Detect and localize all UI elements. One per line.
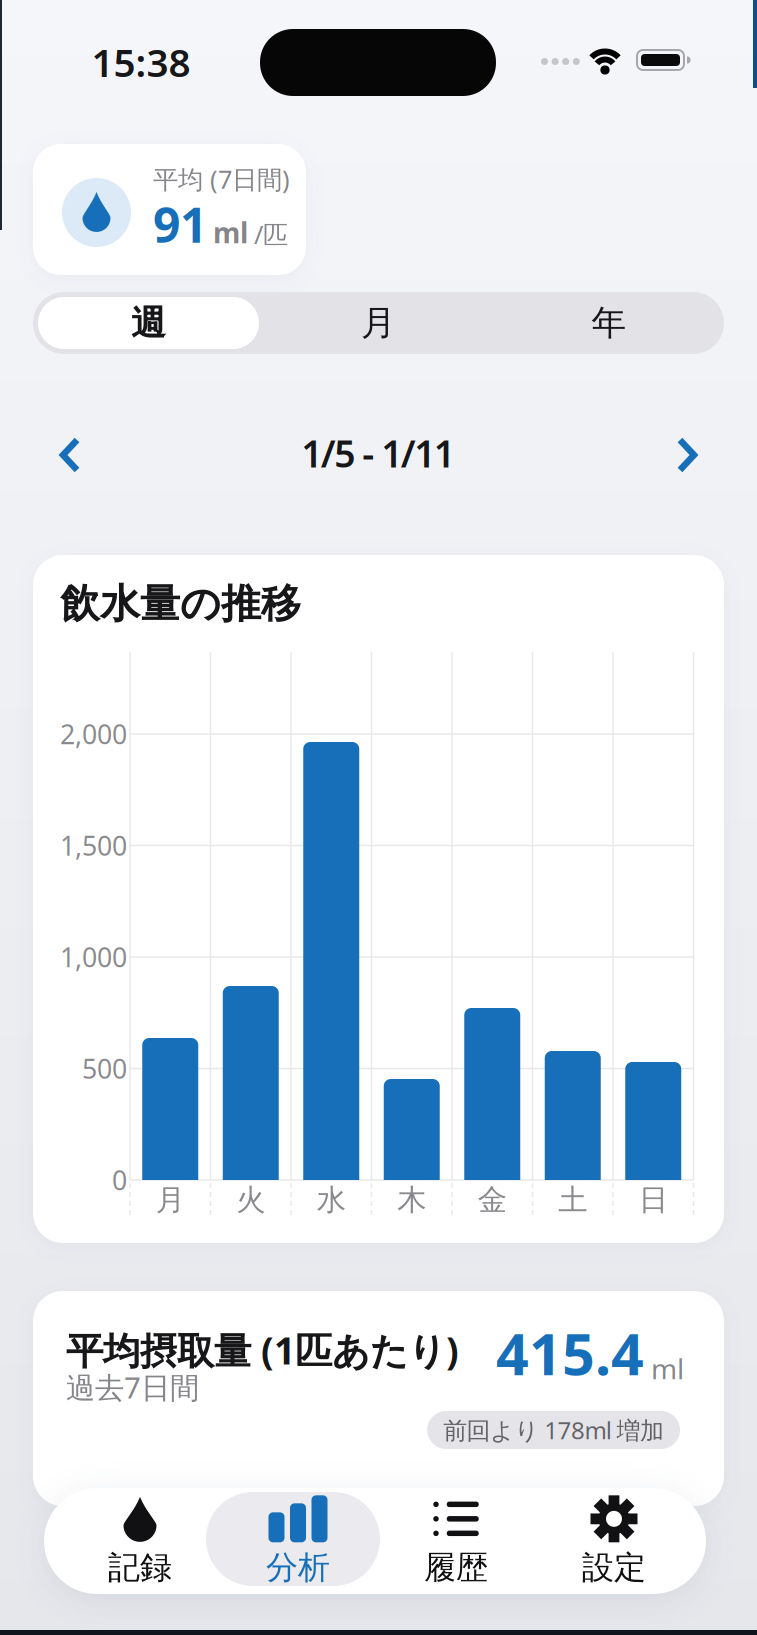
staticText: 15:38	[91, 36, 190, 88]
staticText: 記録	[108, 1548, 172, 1587]
staticText: 設定	[582, 1548, 646, 1587]
staticText: 週	[131, 302, 166, 344]
staticText: 分析	[266, 1548, 330, 1587]
staticText: 前回より 178ml 増加	[443, 1414, 664, 1446]
staticText: 年	[591, 302, 626, 344]
button[interactable]: 週	[38, 297, 259, 349]
button[interactable]: 年	[494, 292, 724, 354]
staticText: ml	[651, 1350, 684, 1387]
staticText: 0	[112, 1162, 127, 1198]
staticText: 履歴	[424, 1548, 488, 1587]
staticText: 水	[317, 1182, 346, 1218]
staticText: 日	[639, 1182, 668, 1218]
staticText: 500	[82, 1051, 127, 1086]
button[interactable]: 記録	[61, 1488, 219, 1594]
staticText: 木	[397, 1182, 426, 1218]
staticText: 土	[558, 1182, 587, 1218]
staticText: 金	[478, 1182, 507, 1218]
staticText: 月	[156, 1182, 185, 1218]
staticText: 91	[153, 192, 207, 256]
staticText: 1/5 - 1/11	[301, 428, 455, 478]
button[interactable]	[59, 437, 81, 473]
staticText: 月	[361, 302, 396, 344]
staticText: ml	[213, 214, 248, 251]
staticText: 1,500	[60, 828, 127, 863]
staticText: 平均 (7日間)	[153, 162, 290, 196]
button[interactable]: 月	[263, 292, 493, 354]
button[interactable]: 履歴	[377, 1488, 535, 1594]
staticText: /匹	[254, 217, 288, 251]
staticText: 火	[236, 1182, 265, 1218]
staticText: 飲水量の推移	[60, 579, 301, 628]
button[interactable]: 分析	[219, 1488, 377, 1594]
staticText: 1,000	[60, 939, 127, 975]
button[interactable]	[676, 437, 698, 473]
staticText: 2,000	[60, 716, 127, 752]
staticText: 過去7日間	[66, 1367, 199, 1406]
staticText: 415.4	[496, 1315, 644, 1391]
staticText: 平均摂取量 (1匹あたり)	[66, 1325, 459, 1375]
button[interactable]: 設定	[535, 1488, 693, 1594]
